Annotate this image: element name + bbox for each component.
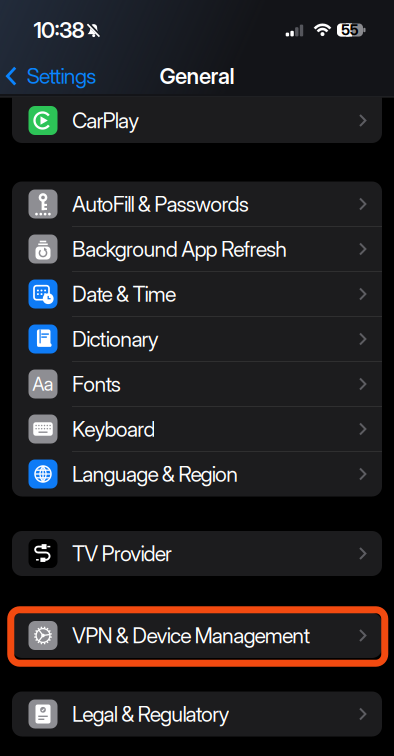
staticText: VPN & Device Management bbox=[72, 623, 310, 648]
button[interactable]: Aa bbox=[12, 361, 382, 406]
button[interactable]: Background App Refresh bbox=[12, 226, 382, 271]
button[interactable]: Legal & Regulatory bbox=[12, 691, 382, 736]
button[interactable]: Language & Region bbox=[12, 451, 382, 496]
button[interactable]: CarPlay bbox=[12, 98, 382, 143]
button[interactable]: VPN & Device Management bbox=[12, 613, 382, 658]
staticText: General bbox=[159, 63, 234, 89]
button[interactable]: AutoFill & Passwords bbox=[12, 181, 382, 226]
staticText: TV Provider bbox=[72, 541, 172, 566]
button[interactable]: Back to Settings bbox=[6, 63, 96, 89]
button[interactable]: Date & Time bbox=[12, 271, 382, 316]
staticText: Legal & Regulatory bbox=[72, 701, 229, 727]
staticText: Settings bbox=[27, 63, 96, 89]
staticText: AutoFill & Passwords bbox=[72, 191, 249, 217]
staticText: Fonts bbox=[72, 371, 121, 397]
staticText: 10:38 bbox=[33, 17, 84, 43]
button[interactable]: TV Provider bbox=[12, 531, 382, 576]
staticText: Aa bbox=[32, 373, 54, 395]
staticText: Language & Region bbox=[72, 461, 238, 487]
staticText: CarPlay bbox=[72, 108, 139, 133]
button[interactable]: Dictionary bbox=[12, 316, 382, 361]
button[interactable]: Keyboard bbox=[12, 406, 382, 451]
staticText: Background App Refresh bbox=[72, 236, 287, 262]
staticText: Keyboard bbox=[72, 416, 155, 442]
staticText: Date & Time bbox=[72, 281, 176, 307]
staticText: Dictionary bbox=[72, 326, 159, 352]
staticText: 55 bbox=[341, 21, 359, 39]
